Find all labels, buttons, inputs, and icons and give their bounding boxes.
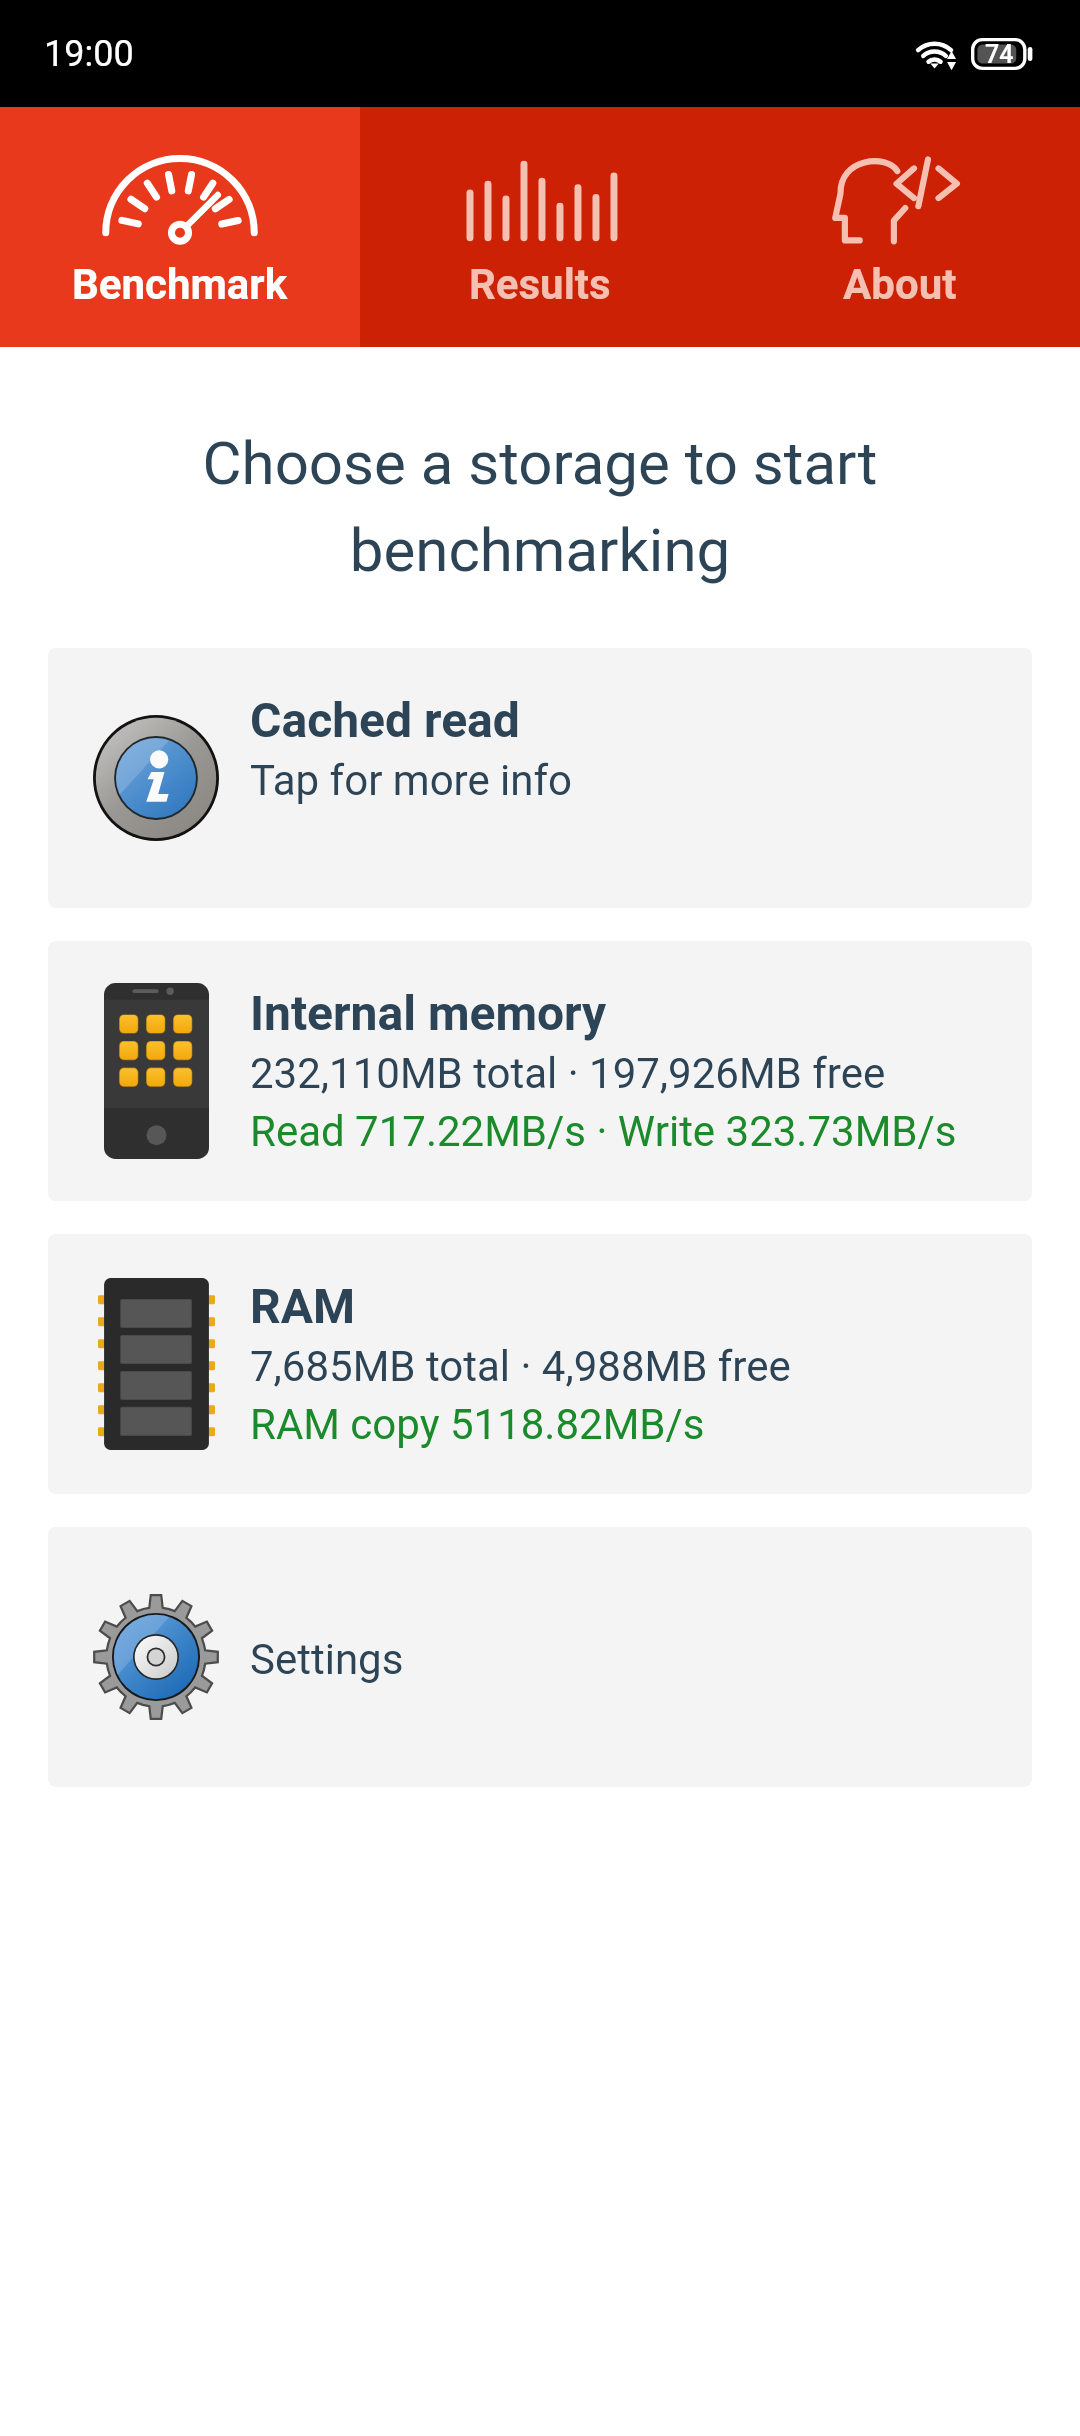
staticText: 7,685MB total · 4,988MB free bbox=[250, 1335, 791, 1393]
staticText: RAM copy 5118.82MB/s bbox=[250, 1393, 705, 1451]
other: RAM bbox=[98, 1278, 215, 1450]
staticText: 74 bbox=[985, 40, 1014, 69]
other: Wi-Fi bbox=[919, 39, 956, 69]
button[interactable]: Cached read info bbox=[48, 648, 1032, 908]
staticText: Results bbox=[469, 261, 611, 309]
other: Internal memory bbox=[104, 983, 209, 1159]
other: Settings bbox=[94, 1595, 218, 1719]
other: Cached read info bbox=[93, 715, 219, 841]
button[interactable]: Benchmark bbox=[0, 107, 360, 347]
button[interactable]: Settings bbox=[48, 1527, 1032, 1787]
staticText: RAM bbox=[250, 1277, 355, 1335]
button[interactable]: Internal memory bbox=[48, 941, 1032, 1201]
staticText: Choose a storage to start benchmarking bbox=[145, 428, 935, 586]
other: Battery 74 percent bbox=[971, 38, 1033, 70]
button[interactable]: About bbox=[720, 107, 1080, 347]
staticText: 19:00 bbox=[44, 33, 134, 75]
button[interactable]: RAM bbox=[48, 1234, 1032, 1494]
button[interactable]: Results bbox=[360, 107, 720, 347]
staticText: Read 717.22MB/s · Write 323.73MB/s bbox=[250, 1100, 957, 1158]
staticText: Benchmark bbox=[72, 261, 288, 309]
staticText: Tap for more info bbox=[250, 749, 573, 807]
staticText: 232,110MB total · 197,926MB free bbox=[250, 1042, 886, 1100]
staticText: Settings bbox=[250, 1628, 404, 1686]
staticText: About bbox=[843, 261, 957, 309]
staticText: Cached read bbox=[250, 691, 520, 749]
staticText: Internal memory bbox=[250, 984, 607, 1042]
